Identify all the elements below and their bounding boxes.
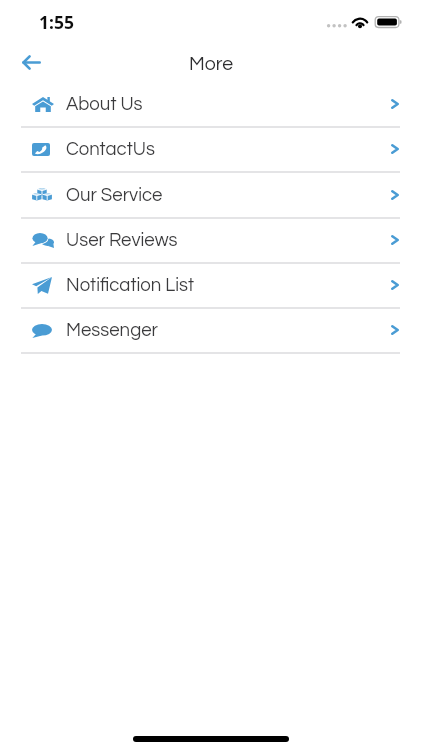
button[interactable]: Messenger <box>0 309 422 354</box>
staticText: About Us <box>66 95 143 114</box>
button[interactable]: About Us <box>0 83 422 128</box>
staticText: Our Service <box>66 186 163 205</box>
button[interactable]: Our Service <box>0 174 422 219</box>
button[interactable]: Notification List <box>0 264 422 309</box>
staticText: ContactUs <box>66 140 155 159</box>
staticText: Notification List <box>66 276 194 295</box>
staticText: Messenger <box>66 321 158 340</box>
button[interactable]: User Reviews <box>0 219 422 264</box>
staticText: 1:55 <box>39 10 74 34</box>
staticText: User Reviews <box>66 231 178 250</box>
staticText: More <box>189 54 234 74</box>
button[interactable]: Back <box>10 46 52 82</box>
button[interactable]: ContactUs <box>0 128 422 173</box>
